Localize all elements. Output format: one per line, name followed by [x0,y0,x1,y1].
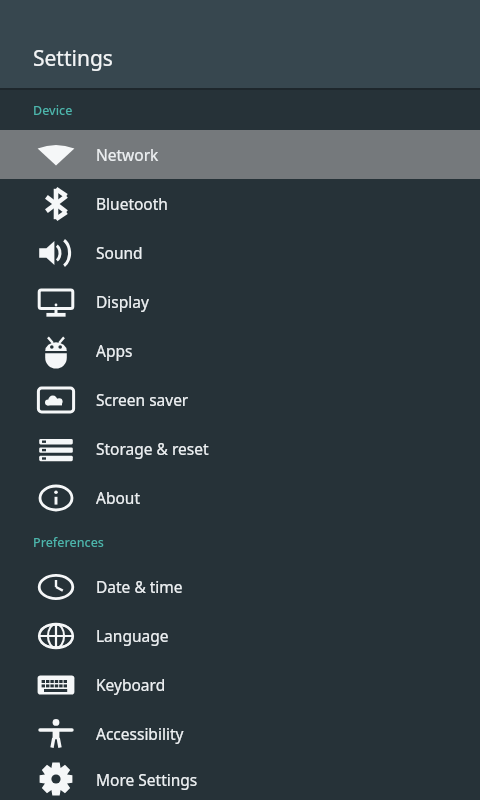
staticText: Accessibility [96,723,184,744]
staticText: Apps [96,340,133,361]
staticText: Settings [33,44,113,73]
staticText: Display [96,291,149,312]
button[interactable]: Storage & reset [0,424,480,473]
staticText: About [96,487,140,508]
staticText: Date & time [96,576,183,597]
staticText: Network [96,144,159,165]
button[interactable]: Apps [0,326,480,375]
staticText: Bluetooth [96,193,168,214]
button[interactable]: Sound [0,228,480,277]
button[interactable]: Accessibility [0,709,480,758]
staticText: Storage & reset [96,438,209,459]
staticText: Sound [96,242,143,263]
staticText: More Settings [96,769,198,790]
button[interactable]: Keyboard [0,660,480,709]
button[interactable]: Language [0,611,480,660]
button[interactable]: More Settings [0,758,480,800]
staticText: Device [33,102,73,119]
staticText: Screen saver [96,389,189,410]
button[interactable]: Network [0,130,480,179]
button[interactable]: Screen saver [0,375,480,424]
staticText: Preferences [33,534,104,551]
button[interactable]: Display [0,277,480,326]
button[interactable]: About [0,473,480,522]
button[interactable]: Bluetooth [0,179,480,228]
staticText: Keyboard [96,674,166,695]
staticText: Language [96,625,169,646]
button[interactable]: Date & time [0,562,480,611]
